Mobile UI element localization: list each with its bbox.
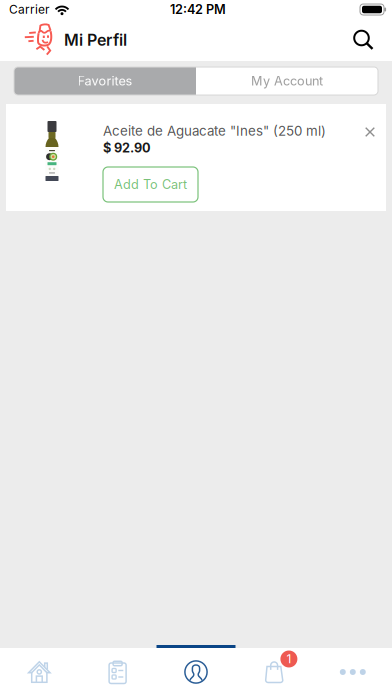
staticText: Add To Cart (114, 177, 187, 192)
staticText: Mi Perfil (64, 30, 127, 50)
staticText: $ 92.90 (103, 140, 151, 156)
button[interactable]: Cart (235, 648, 314, 696)
button[interactable]: Home (0, 648, 78, 696)
button[interactable]: Orders (78, 648, 157, 696)
staticText: 12:42 PM (170, 2, 226, 17)
staticText: Aceite de Aguacate "Ines" (250 ml) (103, 123, 326, 139)
staticText: 1 (286, 652, 291, 666)
button[interactable]: Add To Cart (103, 167, 198, 202)
button[interactable]: Profile (157, 648, 235, 696)
button[interactable]: Search (343, 19, 392, 60)
staticText: My Account (251, 73, 323, 89)
button[interactable]: Remove (356, 118, 384, 146)
staticText: Carrier (9, 2, 50, 17)
staticText: Favorites (77, 73, 132, 89)
button[interactable]: More (314, 648, 392, 696)
button[interactable]: Mi Perfil (0, 19, 127, 61)
button[interactable]: Favorites (14, 67, 196, 95)
button[interactable]: My Account (196, 67, 378, 95)
